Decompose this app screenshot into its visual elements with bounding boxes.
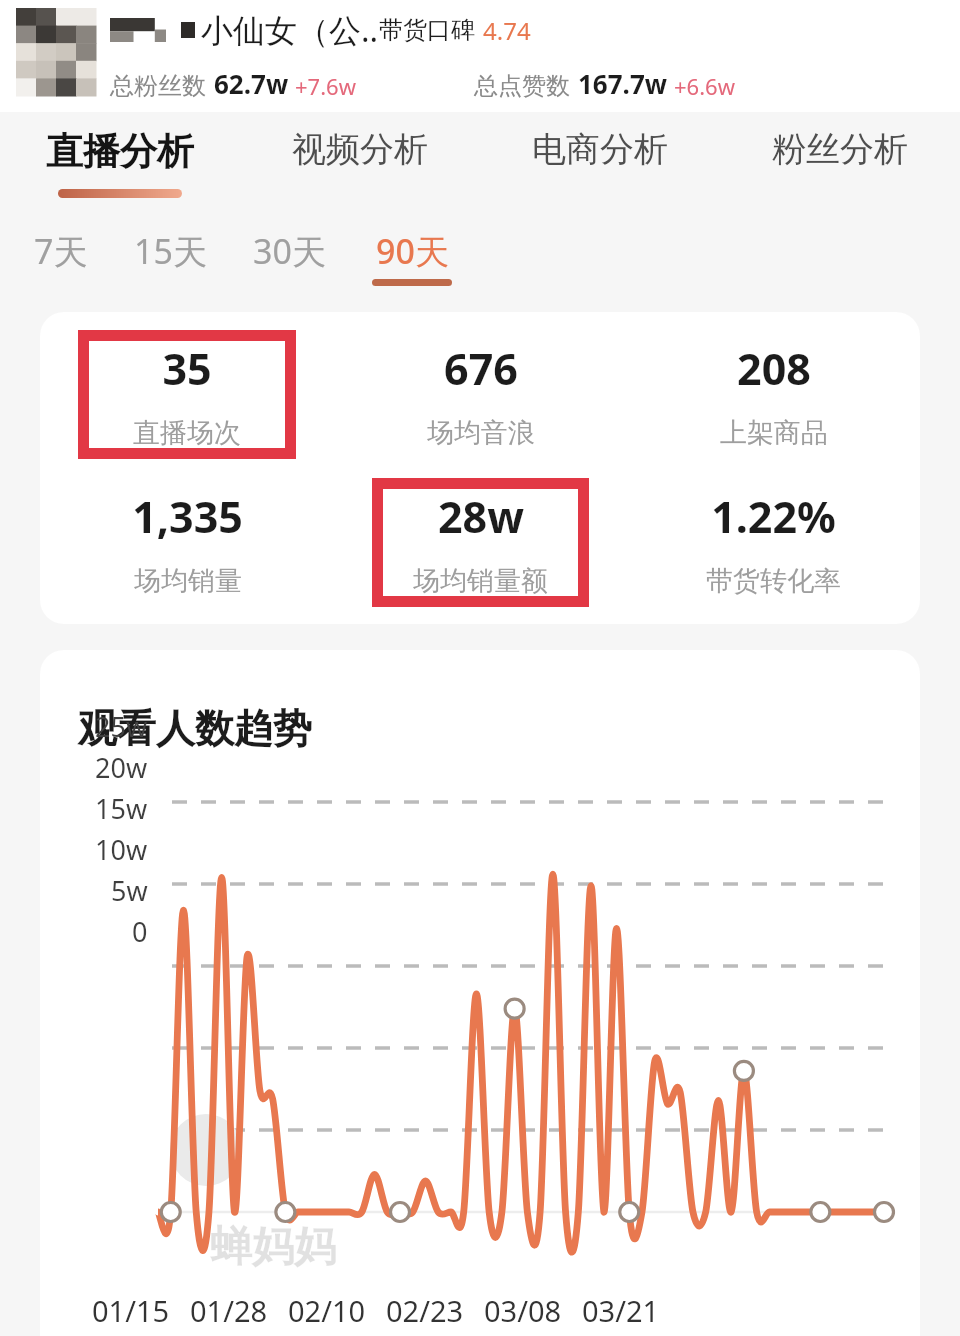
button[interactable]: 1.22% <box>627 472 920 612</box>
button[interactable]: 35 <box>40 324 334 464</box>
staticText: 5w <box>111 872 148 909</box>
button[interactable]: 676 <box>334 324 627 464</box>
staticText: 直播场次 <box>133 416 241 450</box>
staticText: 蝉妈妈 <box>210 1221 336 1274</box>
staticText: 25w <box>95 708 148 745</box>
button[interactable]: 电商分析 <box>480 112 720 208</box>
staticText: 1,335 <box>132 487 243 546</box>
staticText: 7天 <box>34 228 88 274</box>
staticText: +6.6w <box>674 71 735 101</box>
staticText: 20w <box>95 749 148 786</box>
button[interactable]: 视频分析 <box>240 112 480 208</box>
staticText: 10w <box>95 831 148 868</box>
staticText: 1.22% <box>711 487 836 546</box>
button[interactable]: 总点赞数 <box>474 66 735 101</box>
staticText: 小仙女（公.. <box>201 8 379 52</box>
staticText: 208 <box>737 339 811 398</box>
staticText: 167.7w <box>578 66 668 101</box>
staticText: 0 <box>132 913 148 950</box>
button[interactable]: 208 <box>627 324 920 464</box>
staticText: 30天 <box>253 228 326 274</box>
button[interactable]: 总粉丝数 <box>110 66 356 101</box>
staticText: 02/23 <box>386 1291 464 1330</box>
staticText: 总粉丝数 <box>110 71 206 101</box>
staticText: 场均音浪 <box>427 416 535 450</box>
staticText: 90天 <box>376 228 449 274</box>
staticText: 总点赞数 <box>474 71 570 101</box>
staticText: 01/28 <box>190 1291 268 1330</box>
button[interactable]: 直播分析 <box>0 112 240 208</box>
staticText: 35 <box>162 339 212 398</box>
staticText: 02/10 <box>288 1291 366 1330</box>
staticText: 直播分析 <box>46 128 194 175</box>
button[interactable]: 粉丝分析 <box>720 112 960 208</box>
staticText: 15天 <box>134 228 207 274</box>
staticText: 62.7w <box>214 66 289 101</box>
staticText: 03/21 <box>582 1291 660 1330</box>
staticText: 28w <box>438 487 524 546</box>
staticText: 场均销量额 <box>413 564 548 598</box>
staticText: 视频分析 <box>292 128 428 171</box>
staticText: 粉丝分析 <box>772 128 908 171</box>
staticText: 带货转化率 <box>706 564 841 598</box>
button[interactable]: 7天 <box>34 228 88 274</box>
staticText: 观看人数趋势 <box>78 704 312 753</box>
staticText: 场均销量 <box>134 564 242 598</box>
button[interactable]: 30天 <box>253 228 326 274</box>
button[interactable]: 1,335 <box>40 472 334 612</box>
staticText: 15w <box>95 790 148 827</box>
staticText: 带货口碑 <box>379 15 475 45</box>
staticText: 676 <box>444 339 518 398</box>
button[interactable]: 15天 <box>134 228 207 274</box>
staticText: 4.74 <box>483 14 531 47</box>
staticText: 电商分析 <box>532 128 668 171</box>
staticText: 01/15 <box>92 1291 170 1330</box>
staticText: 03/08 <box>484 1291 562 1330</box>
button[interactable]: 90天 <box>372 228 452 286</box>
staticText: +7.6w <box>295 71 356 101</box>
staticText: 上架商品 <box>720 416 828 450</box>
button[interactable]: 28w <box>334 472 627 612</box>
